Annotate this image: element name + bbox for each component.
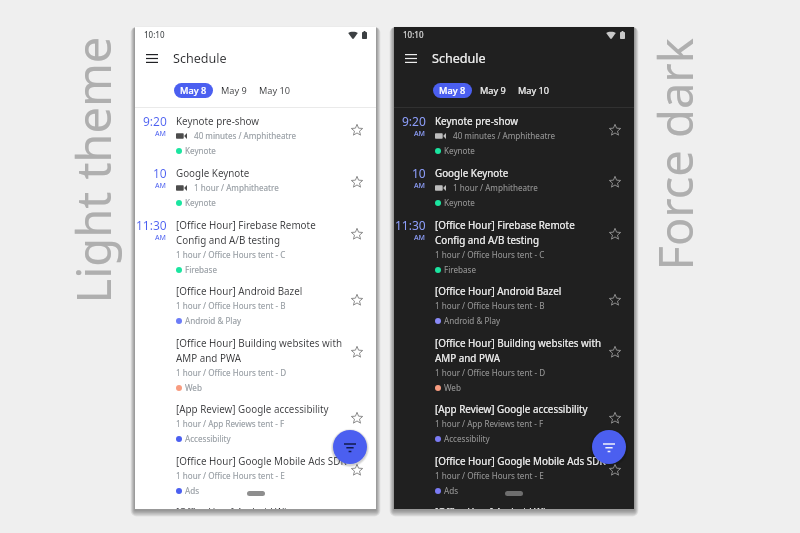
staticText: 1 hour / App Reviews tent - F [435, 418, 544, 429]
button[interactable]: Filter [333, 430, 367, 464]
staticText: May 9 [221, 84, 247, 97]
staticText: May 10 [518, 84, 550, 97]
staticText: 40 minutes / Amphitheatre [453, 130, 556, 141]
staticText: Schedule [173, 50, 227, 67]
staticText: 1 hour / Office Hours tent - D [435, 367, 546, 378]
staticText: AM [414, 181, 426, 191]
staticText: Ads [185, 485, 200, 496]
staticText: [App Review] Google accessibility [176, 402, 329, 415]
button[interactable]: Bookmark [337, 335, 376, 369]
button[interactable]: Bookmark [337, 283, 376, 317]
button[interactable]: 10 [394, 165, 634, 217]
staticText: Keynote [444, 145, 475, 156]
button[interactable]: [Office Hour] Google Mobile Ads SDK [394, 453, 634, 505]
button[interactable]: May 9 [217, 83, 251, 98]
staticText: [Office Hour] Building websites with AMP… [435, 336, 602, 365]
button[interactable]: [Office Hour] Android Bazel [135, 283, 376, 335]
staticText: Firebase [185, 264, 217, 275]
staticText: Web [444, 382, 461, 393]
staticText: Firebase [444, 264, 476, 275]
button[interactable]: Bookmark [595, 453, 634, 487]
staticText: Android & Play [444, 315, 501, 326]
staticText: [Office Hour] Firebase Remote Config and… [435, 218, 575, 247]
button[interactable]: [Office Hour] Building websites with AMP… [135, 335, 376, 401]
staticText: 9:20 [402, 113, 426, 128]
staticText: Web [185, 382, 202, 393]
button[interactable]: Bookmark [595, 165, 634, 199]
staticText: 10:10 [144, 29, 165, 40]
staticText: [App Review] Google accessibility [435, 402, 588, 415]
staticText: [Office Hour] Android Wi... [176, 505, 295, 509]
staticText: May 8 [180, 84, 207, 97]
staticText: Force dark [642, 37, 706, 270]
button[interactable]: Bookmark [595, 113, 634, 147]
staticText: May 8 [439, 84, 466, 97]
button[interactable] [401, 48, 421, 68]
staticText: 40 minutes / Amphitheatre [194, 130, 297, 141]
staticText: 1 hour / Office Hours tent - E [435, 470, 544, 481]
button[interactable]: Bookmark [595, 283, 634, 317]
staticText: 1 hour / Amphitheatre [453, 182, 538, 193]
staticText: 10 [153, 165, 167, 180]
staticText: Accessibility [185, 433, 231, 444]
staticText: Keynote pre-show [435, 114, 519, 127]
staticText: [Office Hour] Android Wi... [435, 505, 554, 509]
staticText: May 10 [259, 84, 291, 97]
staticText: Keynote [444, 197, 475, 208]
staticText: 1 hour / Office Hours tent - E [176, 470, 285, 481]
staticText: AM [414, 233, 426, 243]
staticText: [Office Hour] Android Bazel [176, 284, 303, 297]
button[interactable]: Bookmark [337, 401, 376, 435]
staticText: 1 hour / Office Hours tent - D [176, 367, 287, 378]
staticText: 1 hour / App Reviews tent - F [176, 418, 285, 429]
staticText: AM [155, 129, 167, 139]
staticText: AM [155, 181, 167, 191]
button[interactable]: Bookmark [595, 401, 634, 435]
staticText: [Office Hour] Google Mobile Ads SDK [176, 454, 347, 467]
button[interactable]: 11:30 [394, 217, 634, 283]
button[interactable]: 9:20 [394, 113, 634, 165]
staticText: Light theme [60, 36, 124, 303]
button[interactable]: Bookmark [595, 217, 634, 251]
staticText: Ads [444, 485, 459, 496]
button[interactable]: 11:30 [135, 217, 376, 283]
staticText: Google Keynote [176, 166, 250, 179]
staticText: Android & Play [185, 315, 242, 326]
staticText: [Office Hour] Building websites with AMP… [176, 336, 343, 365]
button[interactable]: [Office Hour] Google Mobile Ads SDK [135, 453, 376, 505]
staticText: 11:30 [395, 217, 426, 232]
button[interactable]: [Office Hour] Building websites with AMP… [394, 335, 634, 401]
button[interactable]: May 10 [514, 83, 554, 98]
staticText: 11:30 [136, 217, 167, 232]
staticText: Keynote [185, 145, 216, 156]
button[interactable]: Bookmark [337, 165, 376, 199]
staticText: 10 [412, 165, 426, 180]
staticText: AM [155, 233, 167, 243]
button[interactable]: 9:20 [135, 113, 376, 165]
button[interactable]: Bookmark [337, 217, 376, 251]
staticText: 1 hour / Amphitheatre [194, 182, 279, 193]
staticText: May 9 [480, 84, 506, 97]
staticText: Keynote pre-show [176, 114, 260, 127]
button[interactable]: Bookmark [337, 113, 376, 147]
button[interactable]: May 8 [174, 83, 213, 98]
button[interactable] [142, 48, 162, 68]
button[interactable]: Bookmark [595, 335, 634, 369]
button[interactable]: May 8 [433, 83, 472, 98]
button[interactable]: [App Review] Google accessibility [135, 401, 376, 453]
staticText: Keynote [185, 197, 216, 208]
button[interactable]: [Office Hour] Android Bazel [394, 283, 634, 335]
button[interactable]: May 10 [255, 83, 295, 98]
button[interactable]: May 9 [476, 83, 510, 98]
button[interactable]: Bookmark [337, 453, 376, 487]
staticText: [Office Hour] Android Bazel [435, 284, 562, 297]
staticText: 1 hour / Office Hours tent - C [435, 249, 545, 260]
button[interactable]: Filter [592, 430, 626, 464]
staticText: [Office Hour] Firebase Remote Config and… [176, 218, 316, 247]
staticText: Schedule [432, 50, 486, 67]
staticText: 1 hour / Office Hours tent - B [435, 300, 545, 311]
staticText: Accessibility [444, 433, 490, 444]
staticText: 10:10 [403, 29, 424, 40]
button[interactable]: [App Review] Google accessibility [394, 401, 634, 453]
button[interactable]: 10 [135, 165, 376, 217]
